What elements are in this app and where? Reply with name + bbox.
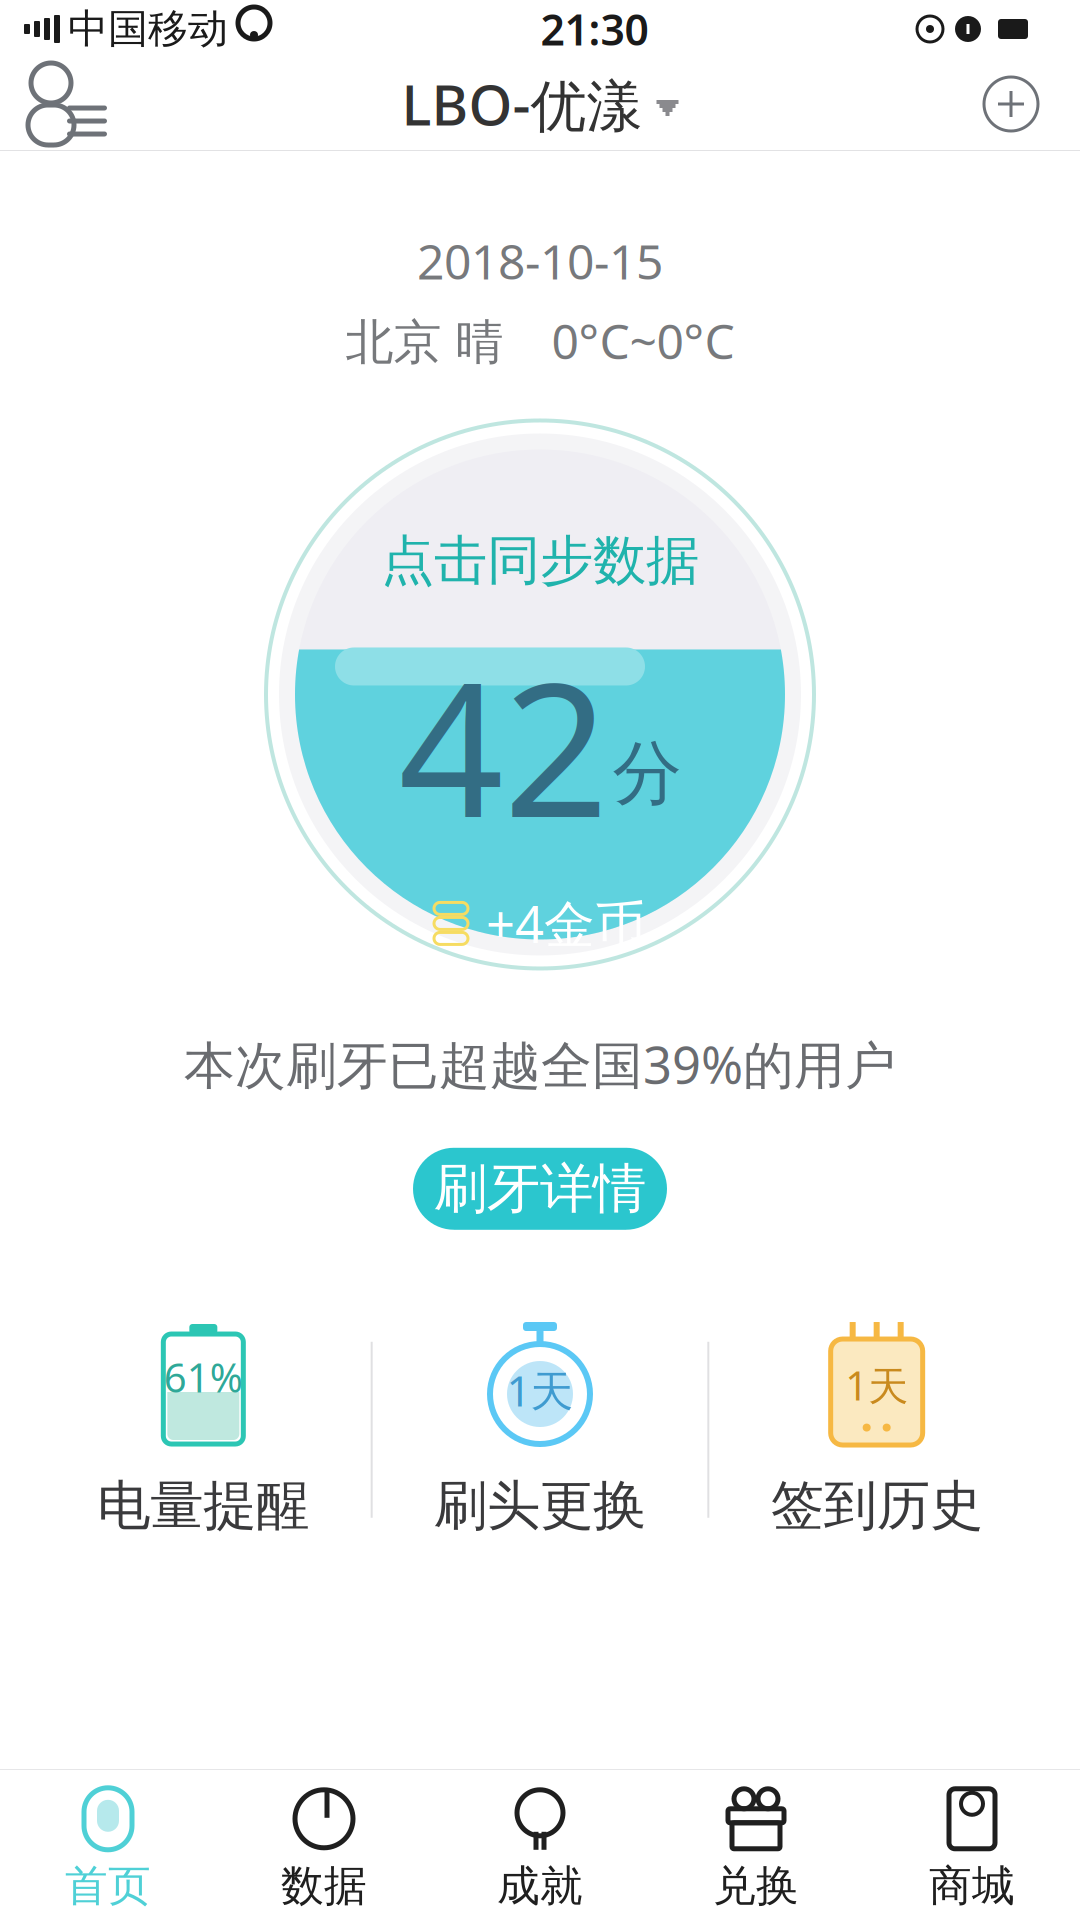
staticText: 商城 bbox=[929, 1860, 1015, 1912]
staticText: 分 bbox=[612, 731, 681, 816]
staticText: 42 bbox=[398, 623, 608, 868]
staticText: 首页 bbox=[65, 1860, 151, 1912]
staticText: 点击同步数据 bbox=[381, 528, 699, 593]
staticText: 兑换 bbox=[713, 1860, 799, 1912]
staticText: 成就 bbox=[497, 1860, 583, 1912]
staticText: 61% bbox=[164, 1350, 243, 1404]
button[interactable]: LBO-优漾 bbox=[391, 58, 688, 150]
button[interactable]: 成就 bbox=[432, 1770, 648, 1920]
button[interactable]: 首页 bbox=[0, 1770, 216, 1920]
staticText: 刷牙详情 bbox=[434, 1156, 646, 1221]
staticText: 本次刷牙已超越全国39%的用户 bbox=[184, 1030, 896, 1098]
button[interactable]: 61% bbox=[36, 1320, 371, 1540]
staticText: 21:30 bbox=[540, 1, 648, 57]
staticText: 1天 bbox=[506, 1362, 573, 1418]
button[interactable]: 点击同步数据 bbox=[260, 414, 820, 974]
staticText: 1天 bbox=[845, 1358, 908, 1412]
staticText: 签到历史 bbox=[771, 1473, 983, 1538]
staticText: 中国移动 bbox=[68, 4, 228, 53]
staticText: 数据 bbox=[281, 1860, 367, 1912]
button[interactable]: 设备列表 bbox=[14, 58, 124, 150]
staticText: LBO-优漾 bbox=[401, 67, 642, 141]
staticText: +4金币 bbox=[486, 890, 646, 957]
button[interactable]: 商城 bbox=[864, 1770, 1080, 1920]
staticText: 刷头更换 bbox=[434, 1473, 646, 1538]
button[interactable]: 兑换 bbox=[648, 1770, 864, 1920]
staticText: 2018-10-15 bbox=[417, 229, 663, 293]
button[interactable]: 1天 bbox=[373, 1320, 707, 1540]
staticText: 北京 晴 0°C~0°C bbox=[345, 309, 734, 372]
staticText: 电量提醒 bbox=[97, 1473, 309, 1538]
button[interactable]: 1天 bbox=[709, 1320, 1044, 1540]
button[interactable]: 刷牙详情 bbox=[413, 1148, 667, 1230]
button[interactable]: 数据 bbox=[216, 1770, 432, 1920]
button[interactable]: 添加 bbox=[956, 58, 1066, 150]
